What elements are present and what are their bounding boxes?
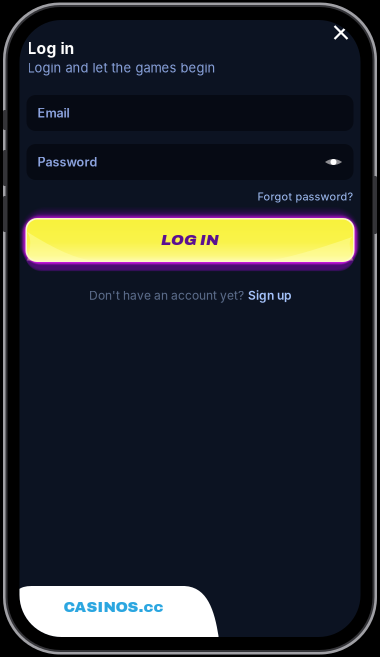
button[interactable]: Sign up bbox=[248, 288, 291, 302]
button[interactable]: Close bbox=[326, 18, 355, 47]
staticText: Sign up bbox=[248, 288, 291, 302]
staticText: Login and let the games begin bbox=[27, 60, 215, 76]
staticText: Password bbox=[37, 154, 97, 170]
button[interactable]: LOG IN bbox=[19, 206, 360, 286]
staticText: CASINOS.cc bbox=[63, 599, 163, 615]
staticText: Email bbox=[37, 105, 69, 121]
staticText: Forgot password? bbox=[257, 190, 353, 203]
button[interactable]: Forgot password? bbox=[257, 190, 353, 203]
staticText: Don't have an account yet? bbox=[89, 288, 244, 302]
staticText: Log in bbox=[27, 39, 74, 58]
staticText: LOG IN bbox=[161, 232, 219, 248]
button[interactable]: Show password bbox=[321, 152, 345, 172]
